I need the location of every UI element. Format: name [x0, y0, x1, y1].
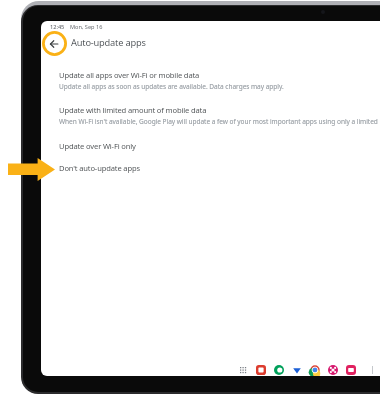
button[interactable]: App — [328, 365, 338, 375]
button[interactable]: App — [310, 365, 320, 375]
button[interactable]: Update with limited amount of mobile dat… — [41, 105, 380, 131]
button[interactable]: App — [346, 365, 356, 375]
button[interactable]: Back — [44, 32, 66, 54]
button[interactable]: App — [256, 365, 266, 375]
staticText: Auto-update apps — [71, 36, 146, 49]
staticText: Update all apps over Wi-Fi or mobile dat… — [59, 70, 200, 80]
staticText: Don't auto-update apps — [59, 163, 140, 173]
staticText: Mon, Sep 16 — [70, 23, 103, 31]
button[interactable]: Update all apps over Wi-Fi or mobile dat… — [41, 70, 380, 96]
staticText: When Wi-Fi isn't available, Google Play … — [59, 117, 378, 126]
staticText: Update over Wi-Fi only — [59, 141, 136, 151]
button[interactable]: Don't auto-update apps — [41, 163, 380, 181]
button[interactable]: All apps — [238, 365, 248, 375]
button[interactable]: App — [292, 365, 302, 375]
button[interactable]: Update over Wi-Fi only — [41, 141, 380, 159]
staticText: Update with limited amount of mobile dat… — [59, 105, 207, 115]
staticText: Update all apps as soon as updates are a… — [59, 82, 284, 91]
button[interactable]: App — [274, 365, 284, 375]
staticText: 12:45 — [50, 23, 65, 31]
